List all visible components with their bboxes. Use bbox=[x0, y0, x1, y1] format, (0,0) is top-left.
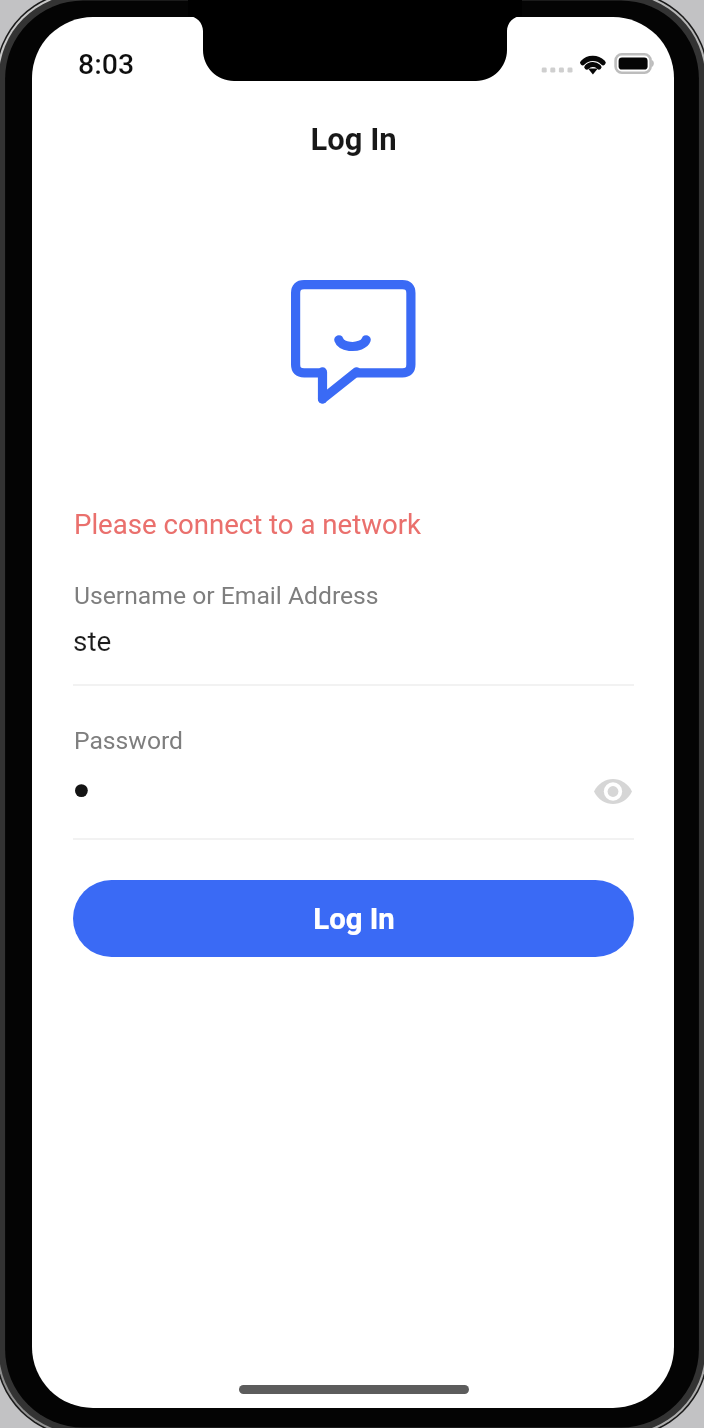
button[interactable]: Log In bbox=[73, 880, 634, 957]
button[interactable]: Password bbox=[73, 716, 634, 840]
staticText: 8:03 bbox=[78, 48, 135, 81]
staticText: Username or Email Address bbox=[74, 581, 379, 610]
staticText: Password bbox=[74, 726, 184, 755]
staticText: Log In bbox=[313, 902, 395, 936]
staticText: ste bbox=[73, 625, 112, 658]
button[interactable]: Show password bbox=[587, 765, 639, 817]
button[interactable]: Username or Email Address bbox=[73, 572, 634, 686]
staticText: Please connect to a network bbox=[74, 508, 421, 540]
staticText: Log In bbox=[310, 121, 397, 157]
